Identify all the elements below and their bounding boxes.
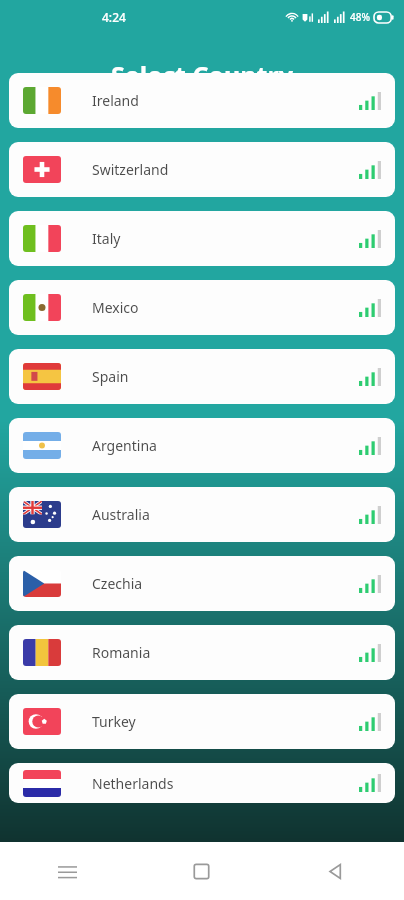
button[interactable]: Romania — [9, 625, 395, 680]
button[interactable]: Back — [269, 842, 404, 900]
staticText: Ireland — [92, 91, 139, 110]
staticText: Italy — [92, 229, 121, 248]
button[interactable]: Switzerland — [9, 142, 395, 197]
button[interactable]: Turkey — [9, 694, 395, 749]
button[interactable]: Czechia — [9, 556, 395, 611]
staticText: Australia — [92, 505, 150, 524]
staticText: Mexico — [92, 298, 139, 317]
button[interactable]: Recents — [0, 842, 134, 900]
button[interactable]: Home — [134, 842, 269, 900]
button[interactable]: Mexico — [9, 280, 395, 335]
staticText: Czechia — [92, 574, 143, 593]
button[interactable]: Argentina — [9, 418, 395, 473]
staticText: Select Country — [0, 58, 404, 92]
staticText: Romania — [92, 643, 151, 662]
staticText: 48% — [350, 10, 370, 24]
staticText: Spain — [92, 367, 129, 386]
staticText: 4:24 — [102, 9, 126, 25]
staticText: Turkey — [92, 712, 136, 731]
button[interactable]: Ireland — [9, 73, 395, 128]
staticText: Argentina — [92, 436, 157, 455]
staticText: Switzerland — [92, 160, 169, 179]
staticText: Netherlands — [92, 774, 174, 793]
button[interactable]: Italy — [9, 211, 395, 266]
button[interactable]: Netherlands — [9, 763, 395, 803]
button[interactable]: Australia — [9, 487, 395, 542]
button[interactable]: Spain — [9, 349, 395, 404]
